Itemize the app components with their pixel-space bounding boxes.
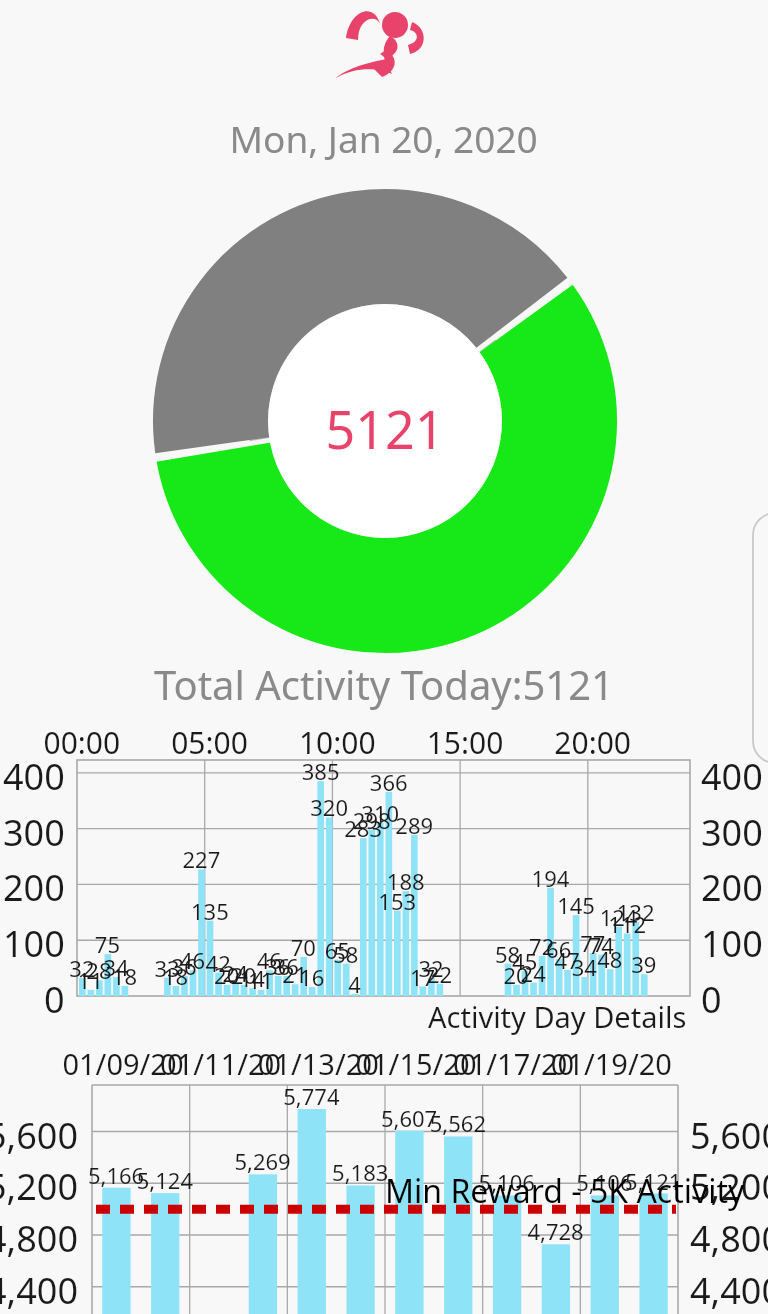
- button[interactable]: Daily activity history chart: [20, 1030, 748, 1310]
- button[interactable]: Activity Day Details chart: [20, 712, 748, 1012]
- button[interactable]: Activity app logo: [340, 8, 430, 92]
- button[interactable]: Today activity progress 5121: [152, 188, 618, 654]
